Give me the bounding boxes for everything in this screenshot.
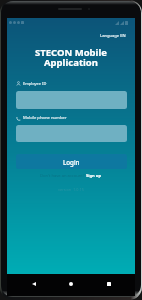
- staticText: version 1.0.15: [7, 187, 135, 192]
- staticText: STECON Mobile Application: [7, 46, 135, 68]
- button[interactable]: Back: [29, 279, 38, 288]
- button[interactable]: Language EN: [95, 32, 135, 40]
- staticText: Employee ID: [23, 81, 47, 86]
- button[interactable]: [16, 91, 127, 109]
- staticText: Don't have an account?: [40, 173, 85, 179]
- staticText: Mobile phone number: [23, 115, 67, 121]
- button[interactable]: Sign up: [86, 173, 102, 179]
- button[interactable]: Recent apps: [104, 279, 113, 288]
- button[interactable]: [16, 125, 127, 142]
- button[interactable]: Home: [66, 279, 75, 288]
- button[interactable]: Login: [16, 154, 127, 169]
- staticText: Sign up: [86, 173, 102, 179]
- staticText: Language EN: [100, 33, 126, 39]
- staticText: Login: [63, 158, 80, 166]
